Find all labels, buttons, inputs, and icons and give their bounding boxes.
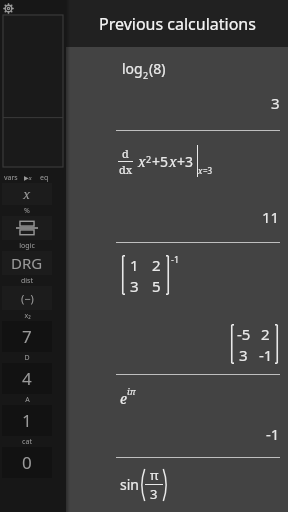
staticText: x₂ [24, 311, 31, 321]
staticText: sin [120, 475, 139, 494]
button[interactable]: 4 [2, 363, 52, 394]
staticText: 1 [130, 255, 139, 275]
button[interactable]: DRG [2, 251, 52, 275]
staticText: 2 [146, 153, 152, 165]
staticText: -1 [171, 253, 180, 265]
staticText: logic [19, 241, 35, 251]
staticText: -1 [266, 424, 280, 444]
staticText: 3 [130, 276, 139, 296]
staticText: log [122, 59, 143, 78]
button[interactable]: (−) [2, 286, 52, 310]
button[interactable]: d [66, 131, 288, 243]
button[interactable]: 0 [2, 447, 52, 478]
staticText: dist [21, 276, 33, 286]
staticText: e [120, 389, 127, 408]
staticText: =3 [203, 165, 213, 176]
staticText: 3 [239, 345, 248, 365]
button[interactable]: Previous calculations [66, 0, 288, 47]
staticText: cat [22, 437, 32, 447]
button[interactable]: Settings [3, 3, 14, 14]
staticText: +5 [152, 152, 169, 171]
button[interactable]: e [66, 375, 288, 458]
staticText: 3 [150, 485, 158, 503]
staticText: 2 [261, 324, 270, 344]
staticText: 2 [143, 69, 149, 81]
staticText: -1 [259, 345, 273, 365]
staticText: 1 [22, 409, 32, 432]
staticText: vars [4, 173, 18, 183]
button[interactable]: log [66, 47, 288, 131]
staticText: 3 [271, 93, 280, 113]
button[interactable]: #frac [2, 216, 52, 240]
button[interactable]: sin [66, 458, 288, 495]
staticText: dx [119, 162, 133, 177]
button[interactable]: 7 [2, 321, 52, 352]
staticText: x [198, 165, 203, 176]
staticText: ▶x [24, 174, 32, 182]
staticText: +3 [177, 152, 194, 171]
staticText: x [23, 185, 31, 203]
button[interactable]: 1 [66, 243, 288, 375]
button[interactable]: x variable [2, 183, 52, 205]
staticText: % [24, 206, 30, 216]
staticText: 7 [22, 325, 32, 348]
staticText: eq [40, 173, 49, 183]
staticText: 5 [152, 276, 161, 296]
staticText: 2 [152, 255, 161, 275]
staticText: 0 [22, 451, 32, 474]
staticText: (8) [149, 59, 166, 78]
staticText: iπ [127, 385, 136, 397]
staticText: d [122, 146, 129, 161]
staticText: A [25, 395, 30, 405]
button[interactable]: Display [3, 15, 63, 167]
button[interactable]: 1 [2, 405, 52, 436]
staticText: DRG [11, 253, 43, 273]
staticText: Previous calculations [99, 13, 256, 35]
staticText: 4 [22, 367, 32, 390]
staticText: D [24, 353, 30, 363]
staticText: 11 [262, 207, 280, 227]
staticText: (−) [21, 291, 34, 306]
staticText: x [138, 152, 146, 171]
staticText: x [169, 152, 177, 171]
staticText: π [150, 466, 159, 484]
staticText: -5 [237, 324, 251, 344]
